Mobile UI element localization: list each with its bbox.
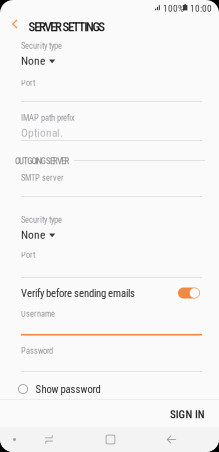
button[interactable]: Recent apps bbox=[34, 427, 63, 452]
staticText: Port bbox=[21, 250, 35, 260]
staticText: SMTP server bbox=[21, 173, 64, 183]
staticText: None bbox=[21, 228, 45, 241]
staticText: OUTGOING SERVER bbox=[15, 156, 69, 166]
staticText: SERVER SETTINGS bbox=[28, 19, 105, 34]
button[interactable]: SIGN IN bbox=[161, 402, 214, 427]
staticText: Port bbox=[21, 78, 35, 88]
staticText: Verify before sending emails bbox=[21, 287, 135, 299]
staticText: Username bbox=[21, 309, 55, 319]
button[interactable]: Back bbox=[0, 0, 20, 20]
staticText: SIGN IN bbox=[170, 408, 205, 421]
staticText: 10:00 bbox=[190, 3, 212, 14]
staticText: Show password bbox=[35, 383, 100, 395]
staticText: Security type bbox=[21, 41, 62, 51]
staticText: None bbox=[21, 54, 45, 67]
staticText: Security type bbox=[21, 215, 62, 225]
staticText: Optional. bbox=[21, 126, 63, 139]
staticText: IMAP path prefix bbox=[21, 113, 75, 123]
button[interactable]: Verify before sending emails bbox=[21, 283, 203, 303]
button[interactable]: Show keyboard bbox=[0, 427, 29, 452]
button[interactable]: Back bbox=[157, 427, 186, 452]
staticText: 100% bbox=[163, 3, 184, 14]
button[interactable]: Show password bbox=[18, 381, 118, 397]
button[interactable]: Home bbox=[96, 427, 125, 452]
staticText: Password bbox=[21, 346, 53, 356]
